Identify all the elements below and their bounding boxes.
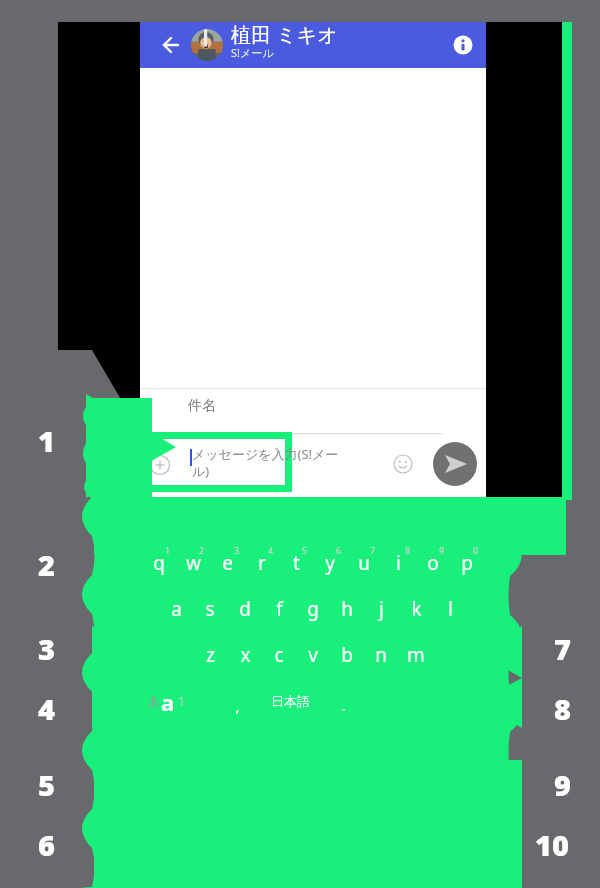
button[interactable] [381,543,415,583]
button[interactable] [330,681,357,721]
staticText: w [186,550,201,576]
button[interactable] [364,589,398,629]
button[interactable] [279,543,313,583]
staticText: q [153,550,165,576]
staticText: t [293,550,300,576]
staticText: ル) [192,462,210,480]
button[interactable] [159,589,193,629]
button[interactable] [193,635,227,675]
button[interactable] [416,543,450,583]
button[interactable]: Switch input mode [142,681,192,721]
staticText: 8 [554,689,571,727]
button[interactable]: Add attachment [146,450,176,480]
staticText: 6 [336,544,342,556]
staticText: 0 [473,544,479,556]
button[interactable] [450,543,484,583]
staticText: z [206,642,215,668]
staticText: a [171,596,182,622]
button[interactable] [330,635,364,675]
button[interactable] [228,635,262,675]
staticText: 1 [38,421,55,459]
button[interactable]: Send [431,440,479,488]
staticText: n [375,642,387,668]
staticText: y [325,550,335,576]
staticText: 4 [38,689,55,727]
staticText: h [341,596,353,622]
staticText: 4 [268,544,274,556]
staticText: 5 [302,544,308,556]
staticText: S!メール [231,45,274,60]
staticText: 3 [234,544,240,556]
staticText: s [205,596,215,622]
staticText: メッセージを入力(S!メー [192,445,339,463]
staticText: k [411,596,422,622]
staticText: 8 [405,544,411,556]
staticText: u [358,550,370,576]
staticText: 7 [554,629,571,667]
button[interactable] [296,635,330,675]
staticText: g [307,596,319,622]
button[interactable] [262,635,296,675]
button[interactable]: Back [142,22,186,68]
button[interactable] [399,635,433,675]
button[interactable] [188,22,446,68]
staticText: 9 [554,765,571,803]
button[interactable] [142,388,486,432]
staticText: b [341,642,353,668]
button[interactable] [193,589,227,629]
staticText: 5 [38,765,55,803]
staticText: i [396,550,401,576]
button[interactable] [245,543,279,583]
button[interactable]: Conversation details [446,22,486,68]
staticText: 日本語 [271,693,310,709]
button[interactable] [296,589,330,629]
button[interactable] [364,635,398,675]
button[interactable] [142,440,378,490]
staticText: 植田 ミキオ [231,21,338,48]
staticText: d [239,596,251,622]
staticText: 7 [370,544,376,556]
staticText: l [448,596,453,622]
button[interactable] [224,681,251,721]
button[interactable] [228,589,262,629]
staticText: , [235,696,240,716]
button[interactable] [433,589,467,629]
button[interactable] [313,543,347,583]
staticText: v [308,642,318,668]
button[interactable] [210,543,244,583]
button[interactable] [330,589,364,629]
staticText: 2 [38,545,55,583]
staticText: あ [148,693,161,708]
staticText: f [276,596,283,622]
staticText: . [341,695,346,715]
button[interactable] [176,543,210,583]
staticText: 9 [439,544,445,556]
staticText: 件名 [188,397,216,415]
staticText: c [274,642,284,668]
button[interactable] [142,543,176,583]
button[interactable] [399,589,433,629]
staticText: m [407,642,425,668]
button[interactable] [347,543,381,583]
button[interactable] [262,589,296,629]
staticText: 2 [199,544,205,556]
staticText: x [240,642,251,668]
button[interactable] [251,681,330,721]
staticText: 3 [38,629,55,667]
button[interactable]: Insert emoji [388,449,418,479]
staticText: p [461,550,473,576]
staticText: o [427,550,439,576]
